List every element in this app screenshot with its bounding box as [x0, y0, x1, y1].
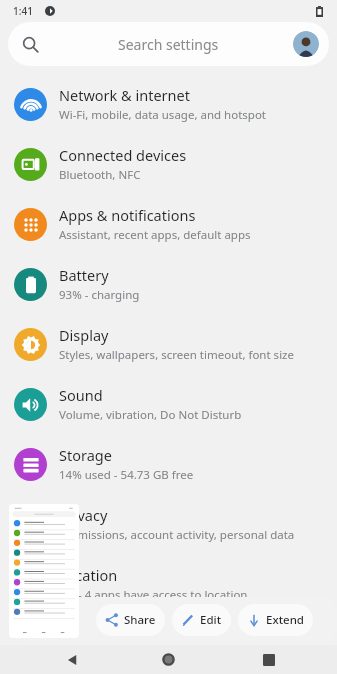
button[interactable]: Recents	[263, 654, 275, 666]
button[interactable]: Home	[161, 652, 176, 667]
staticText: On - 4 apps have access to location	[59, 587, 248, 603]
button[interactable]: Connected devices	[0, 134, 337, 194]
staticText: Styles, wallpapers, screen timeout, font…	[59, 347, 294, 363]
button[interactable]: Display	[0, 314, 337, 374]
staticText: Bluetooth, NFC	[59, 167, 141, 183]
button[interactable]: Network & internet	[0, 74, 337, 134]
button[interactable]: Extend	[238, 604, 313, 636]
button[interactable]: Privacy	[0, 494, 337, 554]
button[interactable]: Battery	[0, 254, 337, 314]
button[interactable]: Apps & notifications	[0, 194, 337, 254]
staticText: Search settings	[118, 35, 219, 54]
staticText: Edit	[200, 612, 222, 628]
button[interactable]: Back	[64, 651, 82, 669]
staticText: Volume, vibration, Do Not Disturb	[59, 407, 242, 423]
staticText: Wi-Fi, mobile, data usage, and hotspot	[59, 107, 266, 123]
staticText: 93% - charging	[59, 287, 140, 303]
staticText: Assistant, recent apps, default apps	[59, 227, 251, 243]
staticText: Permissions, account activity, personal …	[59, 527, 295, 543]
staticText: 1:41	[13, 4, 33, 18]
staticText: Extend	[266, 612, 304, 628]
button[interactable]: Storage	[0, 434, 337, 494]
staticText: Battery	[59, 265, 109, 285]
button[interactable]: Sound	[0, 374, 337, 434]
button[interactable]: Account	[293, 31, 319, 57]
button[interactable]: Search settings	[8, 22, 329, 66]
staticText: Privacy	[59, 505, 108, 525]
staticText: Apps & notifications	[59, 205, 196, 225]
button[interactable]: Screenshot preview	[9, 504, 79, 638]
staticText: Sound	[59, 385, 103, 405]
button[interactable]: Edit	[172, 604, 231, 636]
staticText: Connected devices	[59, 145, 187, 165]
staticText: Share	[124, 612, 156, 628]
staticText: 14% used - 54.73 GB free	[59, 467, 194, 483]
staticText: Location	[59, 565, 118, 585]
staticText: Network & internet	[59, 85, 190, 105]
button[interactable]: Share	[96, 604, 165, 636]
button[interactable]: Location	[0, 554, 337, 614]
staticText: Display	[59, 325, 109, 345]
staticText: Storage	[59, 445, 112, 465]
